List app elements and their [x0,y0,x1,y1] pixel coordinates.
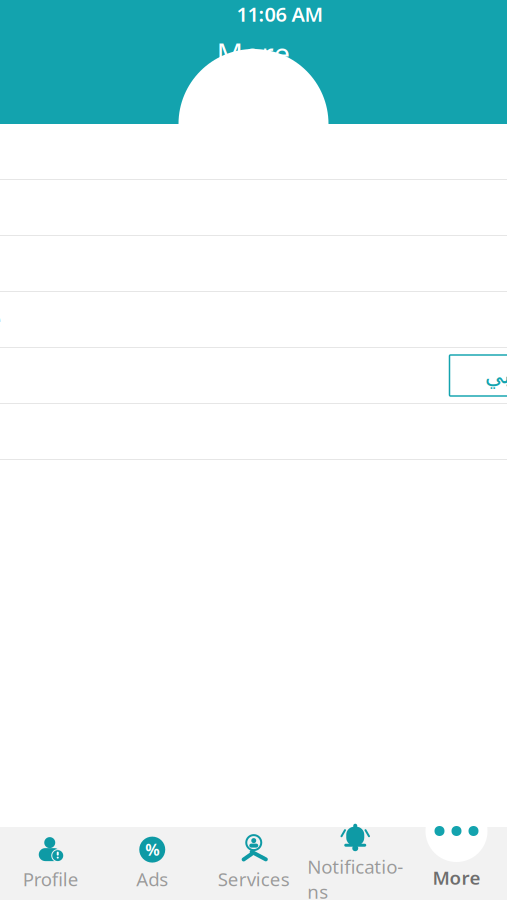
button[interactable]: Who We Are [0,124,507,180]
button[interactable]: % [101,827,203,900]
button[interactable]: Sign Out [0,404,507,460]
staticText: Services [218,867,290,891]
staticText: More [216,33,290,72]
button[interactable]: عربي [449,355,507,396]
button[interactable]: Services [203,827,304,900]
staticText: 11:06 AM [236,1,323,27]
button[interactable]: More [406,800,507,890]
button[interactable]: m [0,292,507,348]
staticText: Notifications [307,854,403,900]
staticText: Profile [23,867,79,891]
staticText: Ads [136,867,168,891]
button[interactable]: Notifications [304,827,406,900]
button[interactable]: Branches [0,180,507,236]
button[interactable]: Contact Us [0,236,507,292]
button[interactable]: Profile [0,827,101,900]
staticText: عربي [484,363,507,388]
button[interactable]: A [0,348,507,404]
staticText: % [145,839,159,860]
staticText: Today Advice [0,304,1,334]
staticText: More [432,865,480,890]
